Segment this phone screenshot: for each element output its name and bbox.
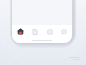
button[interactable]: Documents [28,25,41,38]
button[interactable]: Library [43,25,56,38]
button[interactable]: Home [14,25,27,38]
button[interactable]: Messages [57,25,70,38]
